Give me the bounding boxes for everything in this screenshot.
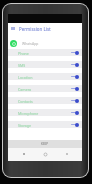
- button[interactable]: Recents: [20, 150, 28, 158]
- staticText: WhatsApp: [22, 41, 39, 46]
- staticText: SMS: [18, 63, 26, 68]
- staticText: Storage: [18, 123, 32, 128]
- button[interactable]: Home: [41, 150, 49, 158]
- button[interactable]: Menu: [9, 25, 16, 32]
- staticText: Location: [18, 75, 33, 80]
- staticText: Camera: [18, 87, 32, 92]
- staticText: KEEP: [41, 142, 49, 146]
- button[interactable]: SMS: [8, 61, 82, 73]
- button[interactable]: Microphone: [8, 109, 82, 121]
- button[interactable]: Storage: [8, 121, 82, 133]
- button[interactable]: Camera: [8, 85, 82, 97]
- staticText: Contacts: [18, 99, 33, 104]
- button[interactable]: KEEP: [8, 140, 82, 148]
- staticText: Permission List: [19, 26, 51, 32]
- button[interactable]: Phone: [8, 49, 82, 61]
- staticText: Phone: [18, 51, 29, 56]
- button[interactable]: Location: [8, 73, 82, 85]
- button[interactable]: Back: [63, 150, 71, 158]
- button[interactable]: Contacts: [8, 97, 82, 109]
- staticText: Microphone: [18, 111, 39, 116]
